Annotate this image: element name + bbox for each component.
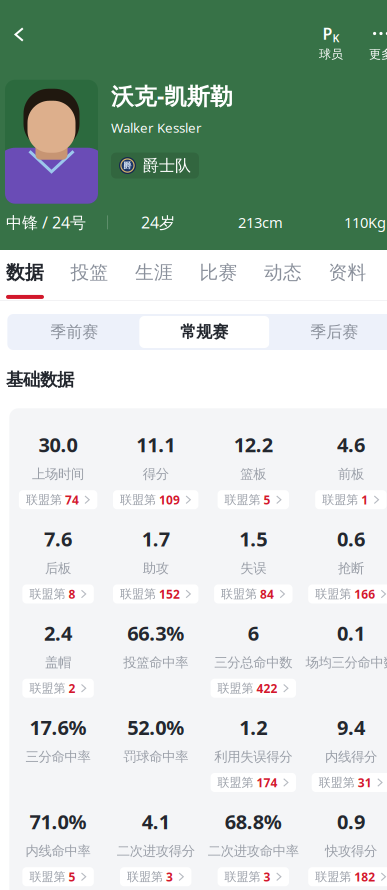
button[interactable]: 联盟第 — [312, 773, 387, 792]
staticText: 11.1 — [136, 431, 175, 458]
staticText: 联盟第 — [120, 587, 156, 601]
button[interactable]: P — [310, 27, 352, 62]
button[interactable]: 季前赛 — [9, 316, 139, 348]
staticText: 2 — [68, 680, 75, 696]
staticText: 24岁 — [141, 212, 175, 233]
staticText: 1.7 — [142, 525, 170, 552]
staticText: 74 — [65, 492, 79, 508]
button[interactable]: 联盟第 — [218, 867, 289, 886]
staticText: 0.6 — [337, 525, 365, 552]
staticText: 31 — [358, 774, 372, 790]
staticText: 后板 — [45, 560, 71, 576]
button[interactable]: 联盟第 — [113, 584, 198, 603]
staticText: 更多 — [369, 47, 387, 62]
button[interactable]: 动态 — [264, 261, 302, 299]
button[interactable]: 投篮 — [70, 261, 108, 299]
button[interactable]: 联盟第 — [22, 584, 94, 603]
staticText: 422 — [257, 680, 278, 696]
staticText: 71.0% — [30, 808, 87, 835]
staticText: 抢断 — [338, 560, 364, 576]
staticText: 联盟第 — [322, 492, 358, 507]
staticText: 快攻得分 — [325, 843, 377, 859]
staticText: 爵 — [123, 161, 131, 170]
staticText: 1.2 — [239, 714, 267, 741]
staticText: 152 — [159, 586, 180, 602]
button[interactable]: 资料 — [328, 261, 366, 299]
staticText: 联盟第 — [127, 869, 163, 884]
staticText: 盖帽 — [45, 654, 71, 671]
button[interactable]: 比赛 — [199, 261, 237, 299]
staticText: 比赛 — [199, 261, 237, 284]
staticText: 前板 — [338, 466, 364, 482]
staticText: 3 — [264, 869, 271, 885]
staticText: 30.0 — [39, 431, 78, 458]
staticText: 182 — [354, 869, 375, 885]
button[interactable]: 联盟第 — [120, 867, 191, 886]
staticText: 166 — [354, 586, 375, 602]
staticText: 66.3% — [127, 620, 184, 646]
staticText: 9.4 — [337, 714, 365, 741]
button[interactable]: 联盟第 — [214, 584, 292, 603]
staticText: 联盟第 — [120, 492, 156, 507]
staticText: 投篮 — [70, 261, 108, 284]
staticText: 生涯 — [135, 261, 173, 284]
staticText: 三分命中率 — [26, 749, 91, 765]
staticText: 联盟第 — [221, 587, 257, 601]
staticText: Walker Kessler — [111, 119, 202, 136]
button[interactable]: 季后赛 — [269, 316, 387, 348]
staticText: 失误 — [240, 560, 266, 576]
button[interactable]: 爵 — [111, 152, 199, 178]
button[interactable]: 更多 — [360, 27, 387, 62]
button[interactable]: 数据 — [6, 261, 44, 299]
staticText: 动态 — [264, 261, 302, 284]
staticText: 3 — [166, 869, 173, 885]
button[interactable]: 联盟第 — [218, 490, 289, 509]
button[interactable]: 联盟第 — [211, 679, 296, 698]
staticText: 联盟第 — [225, 869, 261, 884]
button[interactable]: 联盟第 — [308, 867, 387, 886]
staticText: 上场时间 — [32, 466, 84, 482]
staticText: 联盟第 — [315, 587, 351, 601]
staticText: 数据 — [6, 261, 44, 284]
staticText: 篮板 — [240, 466, 266, 482]
button[interactable]: 生涯 — [135, 261, 173, 299]
staticText: 内线命中率 — [26, 843, 91, 859]
staticText: 174 — [257, 774, 278, 790]
staticText: 三分总命中数 — [214, 654, 292, 671]
staticText: 0.9 — [337, 808, 365, 835]
staticText: 二次进攻命中率 — [208, 843, 299, 859]
button[interactable]: 联盟第 — [22, 679, 94, 698]
staticText: 联盟第 — [225, 492, 261, 507]
staticText: 联盟第 — [218, 775, 254, 790]
button[interactable]: 联盟第 — [211, 773, 296, 792]
staticText: 1 — [361, 492, 368, 508]
staticText: 109 — [159, 492, 180, 508]
staticText: 沃克-凯斯勒 — [111, 81, 233, 111]
staticText: 84 — [260, 586, 274, 602]
staticText: 17.6% — [30, 714, 87, 741]
staticText: 罚球命中率 — [123, 749, 188, 765]
button[interactable]: 联盟第 — [113, 490, 198, 509]
staticText: 联盟第 — [319, 775, 355, 790]
staticText: 利用失误得分 — [214, 749, 292, 765]
button[interactable]: 联盟第 — [22, 867, 94, 886]
staticText: 爵士队 — [143, 156, 191, 175]
staticText: 213cm — [238, 213, 283, 232]
staticText: 二次进攻得分 — [117, 843, 195, 859]
staticText: 得分 — [143, 466, 169, 482]
staticText: 12.2 — [234, 431, 273, 458]
staticText: 4.1 — [142, 808, 170, 835]
staticText: 2.4 — [44, 620, 72, 646]
staticText: 4.6 — [337, 431, 365, 458]
staticText: 季前赛 — [50, 322, 98, 342]
staticText: 联盟第 — [29, 587, 65, 601]
staticText: K — [332, 31, 339, 45]
staticText: P — [322, 23, 332, 44]
button[interactable]: 联盟第 — [308, 584, 387, 603]
button[interactable]: 联盟第 — [315, 490, 387, 509]
button[interactable]: 常规赛 — [139, 316, 269, 348]
button[interactable]: 联盟第 — [19, 490, 97, 509]
staticText: 联盟第 — [315, 869, 351, 884]
button[interactable]: 返回 — [7, 27, 31, 42]
staticText: 联盟第 — [29, 869, 65, 884]
